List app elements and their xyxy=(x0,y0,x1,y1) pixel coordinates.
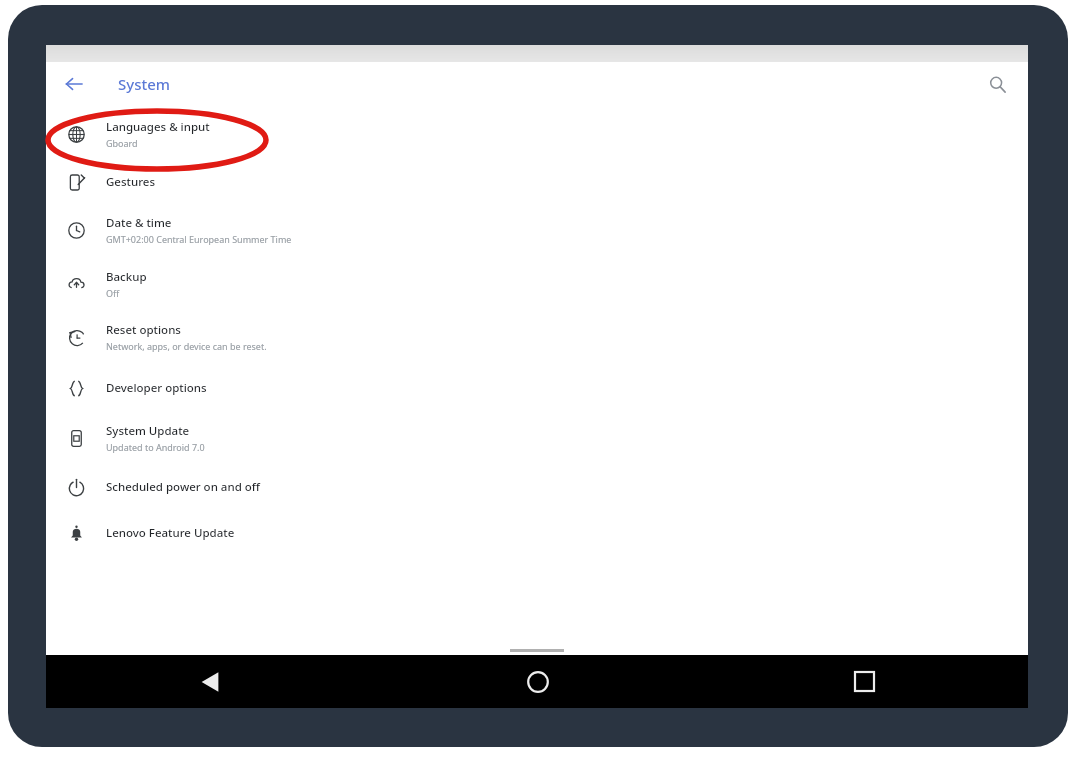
button[interactable]: Back xyxy=(46,655,374,708)
staticText: Off xyxy=(106,287,120,299)
button[interactable]: Languages & input xyxy=(46,108,1028,160)
button[interactable]: Gestures xyxy=(46,160,1028,204)
staticText: System Update xyxy=(106,423,190,439)
staticText: Backup xyxy=(106,269,147,285)
button[interactable]: Developer options xyxy=(46,363,1028,413)
staticText: Developer options xyxy=(106,380,207,396)
staticText: Scheduled power on and off xyxy=(106,479,260,495)
button[interactable]: Date & time xyxy=(46,204,1028,256)
button[interactable]: Scheduled power on and off xyxy=(46,463,1028,511)
button[interactable]: Lenovo Feature Update xyxy=(46,511,1028,555)
staticText: Network, apps, or device can be reset. xyxy=(106,340,267,352)
staticText: Updated to Android 7.0 xyxy=(106,441,205,453)
button[interactable]: Back xyxy=(56,66,92,102)
button[interactable]: System Update xyxy=(46,413,1028,463)
staticText: Gboard xyxy=(106,137,138,149)
button[interactable]: Backup xyxy=(46,256,1028,311)
button[interactable]: Search xyxy=(979,66,1015,102)
staticText: Gestures xyxy=(106,174,155,190)
staticText: Date & time xyxy=(106,215,172,231)
button[interactable]: Home xyxy=(374,655,701,708)
button[interactable]: Recent apps xyxy=(701,655,1028,708)
staticText: Reset options xyxy=(106,322,181,338)
staticText: GMT+02:00 Central European Summer Time xyxy=(106,233,292,245)
staticText: Languages & input xyxy=(106,119,210,135)
button[interactable]: Reset options xyxy=(46,311,1028,363)
staticText: Lenovo Feature Update xyxy=(106,525,235,541)
staticText: System xyxy=(118,74,171,94)
